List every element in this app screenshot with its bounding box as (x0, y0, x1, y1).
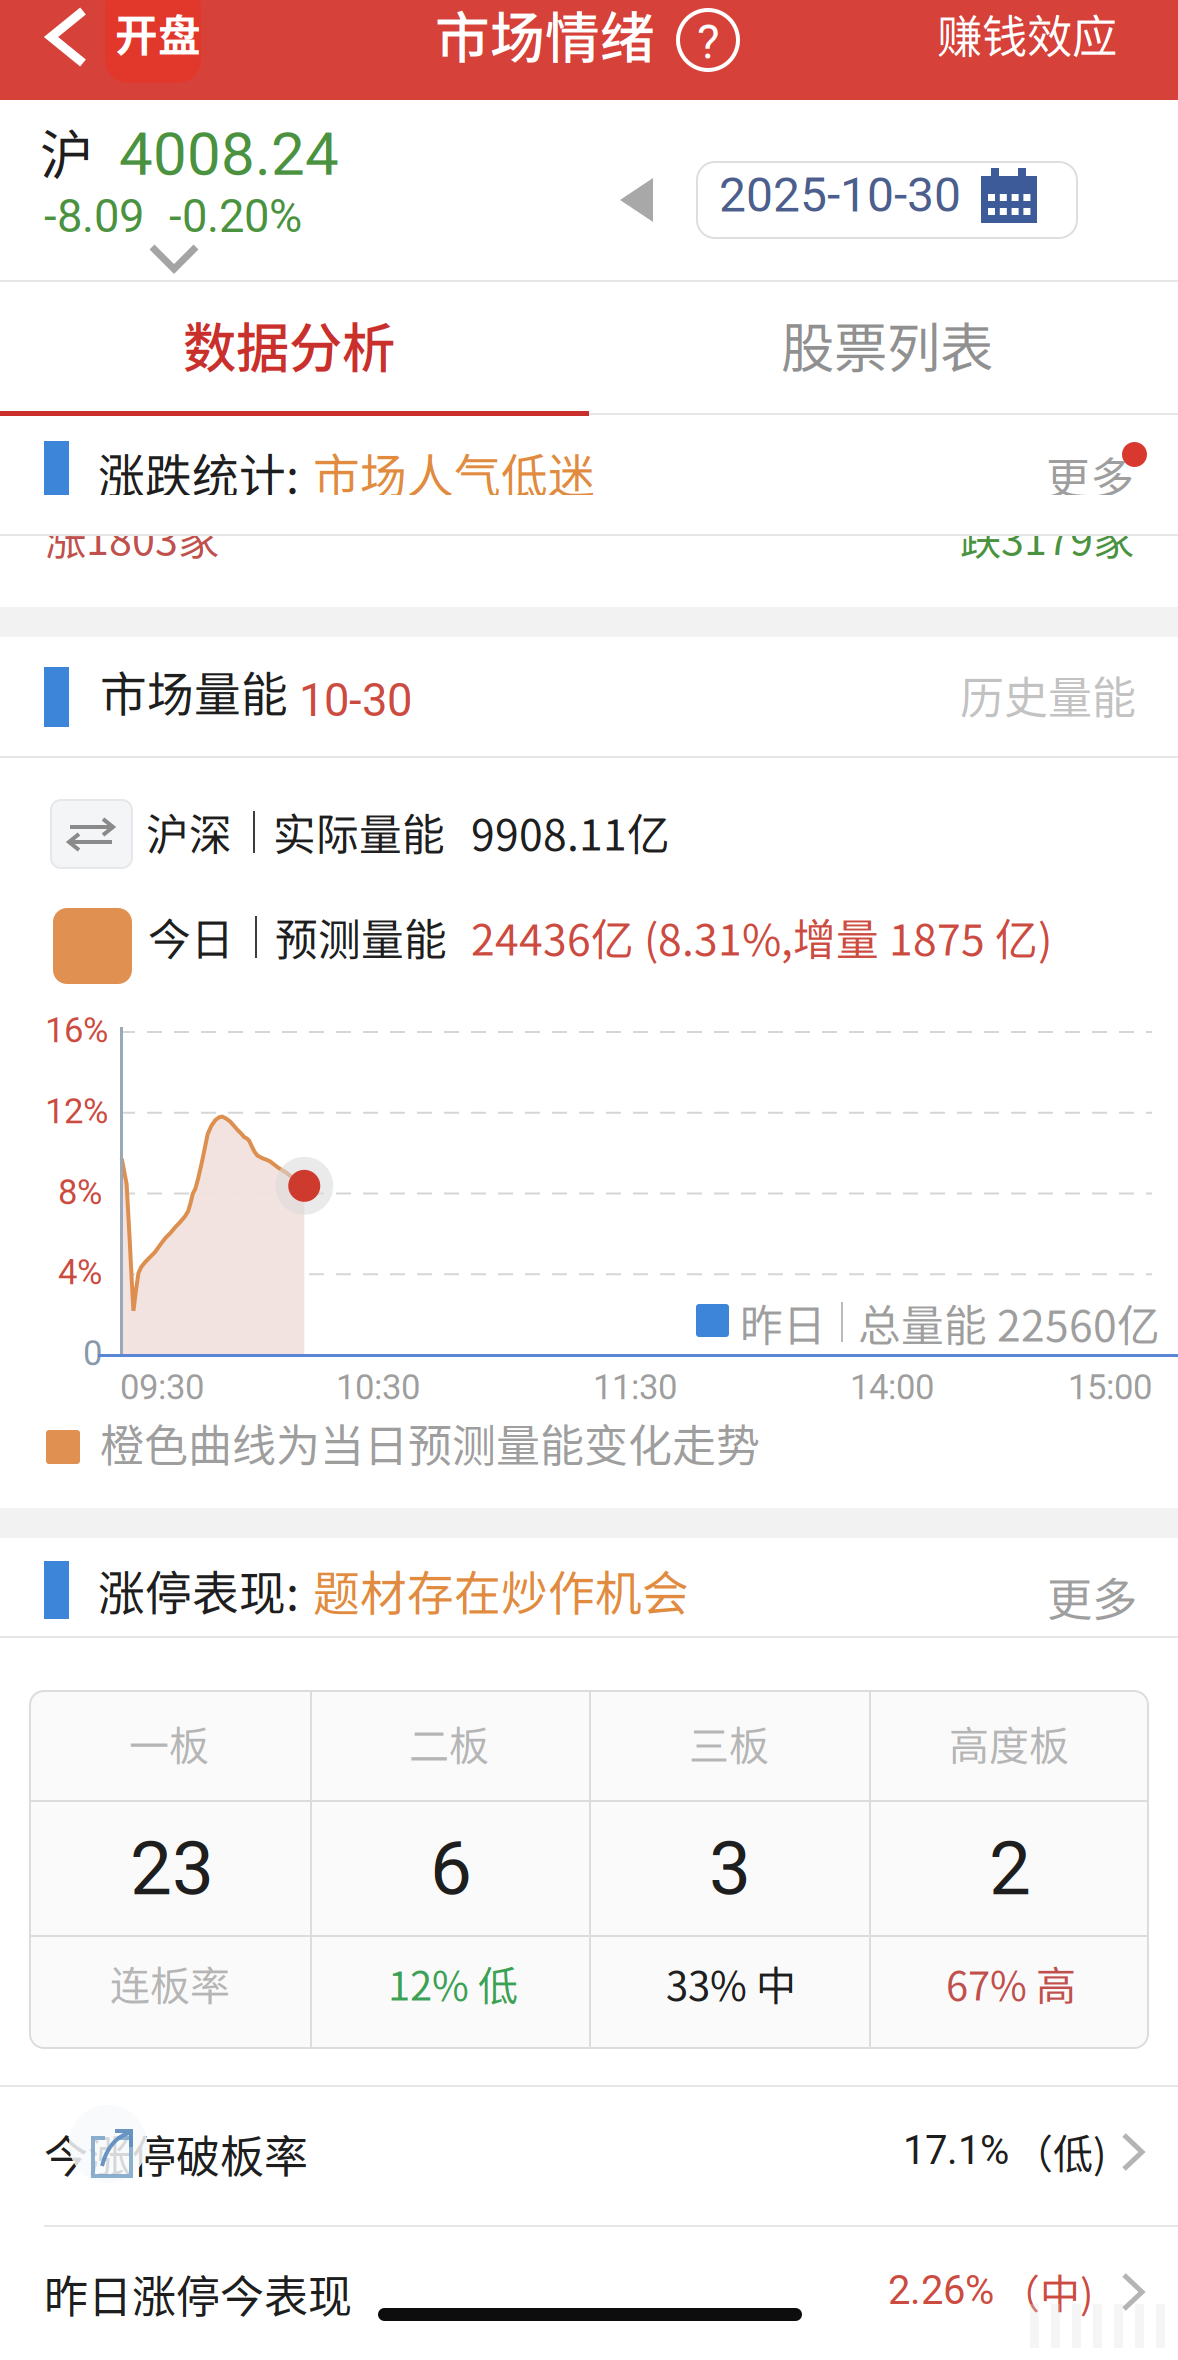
staticText: 09:30 (120, 1367, 204, 1408)
staticText: 连板率 (110, 1954, 230, 2012)
staticText: 跌3179家 (960, 507, 1134, 567)
staticText: 11:30 (593, 1367, 677, 1408)
button[interactable]: 数据分析 (0, 282, 589, 415)
staticText: 高度板 (949, 1714, 1069, 1772)
staticText: 更多 (1047, 1564, 1137, 1630)
staticText: 6 (430, 1825, 472, 1912)
button[interactable]: 股票列表 (589, 282, 1178, 415)
staticText: 数据分析 (183, 306, 395, 383)
staticText: 赚钱效应 (937, 1, 1117, 67)
staticText: 更多 (1046, 444, 1134, 508)
staticText: 股票列表 (781, 306, 993, 383)
button[interactable]: 返回 开盘 (0, 0, 215, 100)
staticText: 橙色曲线为当日预测量能变化走势 (100, 1411, 760, 1475)
staticText: 9908.11亿 (471, 801, 670, 863)
staticText: 24436亿 (8.31%,增量 1875 亿) (471, 906, 1052, 968)
staticText: 2.26% (888, 2267, 994, 2314)
staticText: 12% (45, 1091, 108, 1132)
staticText: 12% 低 (388, 1954, 518, 2012)
button[interactable]: 今涨停破板率 (0, 2087, 1178, 2225)
staticText: 市场量能 (100, 657, 288, 725)
staticText: 涨跌统计: (98, 439, 299, 507)
staticText: 8% (58, 1172, 102, 1213)
staticText: 今日 (148, 906, 234, 968)
staticText: 2025-10-30 (719, 167, 961, 223)
staticText: 市场人气低迷 (313, 439, 595, 507)
staticText: 二板 (409, 1714, 489, 1772)
staticText: 开盘 (115, 2, 201, 64)
staticText: 4% (58, 1252, 102, 1293)
staticText: 昨日 (740, 1292, 826, 1354)
staticText: 昨日涨停今表现 (44, 2262, 352, 2326)
staticText: 2 (989, 1825, 1031, 1912)
staticText: 预测量能 (275, 906, 447, 968)
button[interactable]: 更多 (1021, 1536, 1163, 1658)
staticText: 16% (45, 1010, 108, 1051)
button[interactable]: 前一天 (606, 163, 672, 237)
staticText: 0 (83, 1333, 102, 1374)
staticText: （中) (1000, 2262, 1094, 2320)
staticText: -0.20% (169, 190, 302, 243)
staticText: -8.09 (44, 190, 144, 243)
staticText: 33% 中 (666, 1954, 796, 2012)
button[interactable]: 更多 (1022, 432, 1178, 526)
staticText: 涨停表现: (98, 1556, 299, 1624)
staticText: （低) (1013, 2122, 1107, 2180)
button[interactable]: 历史量能 (938, 637, 1158, 753)
staticText: 14:00 (850, 1367, 934, 1408)
staticText: 实际量能 (273, 801, 445, 863)
staticText: 10:30 (336, 1367, 420, 1408)
staticText: 17.1% (903, 2127, 1009, 2174)
staticText: 总量能 22560亿 (858, 1292, 1160, 1354)
staticText: 10-30 (299, 674, 412, 727)
button[interactable]: 昨日涨停今表现 (0, 2227, 1178, 2360)
staticText: 67% 高 (946, 1954, 1076, 2012)
staticText: 题材存在炒作机会 (313, 1556, 689, 1624)
button[interactable]: 赚钱效应 (919, 0, 1135, 81)
staticText: 三板 (689, 1714, 769, 1772)
staticText: 4008.24 (119, 119, 339, 189)
staticText: 沪 (40, 113, 93, 190)
staticText: 一板 (129, 1714, 209, 1772)
staticText: 3 (709, 1825, 751, 1912)
staticText: 15:00 (1068, 1367, 1152, 1408)
staticText: 历史量能 (960, 663, 1136, 727)
staticText: 涨1803家 (45, 507, 219, 567)
button[interactable]: 说明 (677, 9, 741, 73)
staticText: 市场情绪 (435, 0, 655, 73)
button[interactable]: 展开 (118, 228, 238, 294)
staticText: 沪深 (146, 801, 232, 863)
staticText: 23 (130, 1825, 214, 1912)
button[interactable]: 分享 (69, 2105, 147, 2183)
staticText: ? (697, 14, 720, 70)
button[interactable]: 选择日期 2025-10-30 (697, 162, 1077, 238)
staticText: 今涨停破板率 (44, 2122, 308, 2186)
